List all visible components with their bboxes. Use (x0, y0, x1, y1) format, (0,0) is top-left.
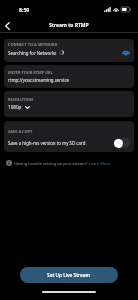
staticText: Searching for Networks (8, 50, 57, 56)
staticText: ENTER YOUR RTMP URL (8, 70, 53, 75)
button[interactable]: 1080p (8, 104, 30, 110)
staticText: Stream to RTMP (49, 22, 89, 29)
button[interactable]: Set Up Live Stream (20, 267, 118, 283)
button[interactable]: Having trouble setting up your stream? L… (6, 160, 134, 166)
staticText: Save a high-res version to my SD card (8, 140, 113, 146)
staticText: SAVE A COPY (8, 129, 33, 134)
button[interactable] (113, 138, 130, 148)
staticText: 8:59 (19, 6, 30, 13)
staticText: RESOLUTION (8, 97, 34, 102)
staticText: Having trouble setting up your stream? L… (14, 161, 111, 166)
staticText: 1080p (8, 104, 22, 110)
staticText: CONNECT TO A NETWORK (8, 42, 58, 47)
staticText: Set Up Live Stream (47, 272, 91, 279)
button[interactable]: Back (0, 18, 15, 33)
staticText: rtmp://your.streaming.service (8, 77, 70, 83)
